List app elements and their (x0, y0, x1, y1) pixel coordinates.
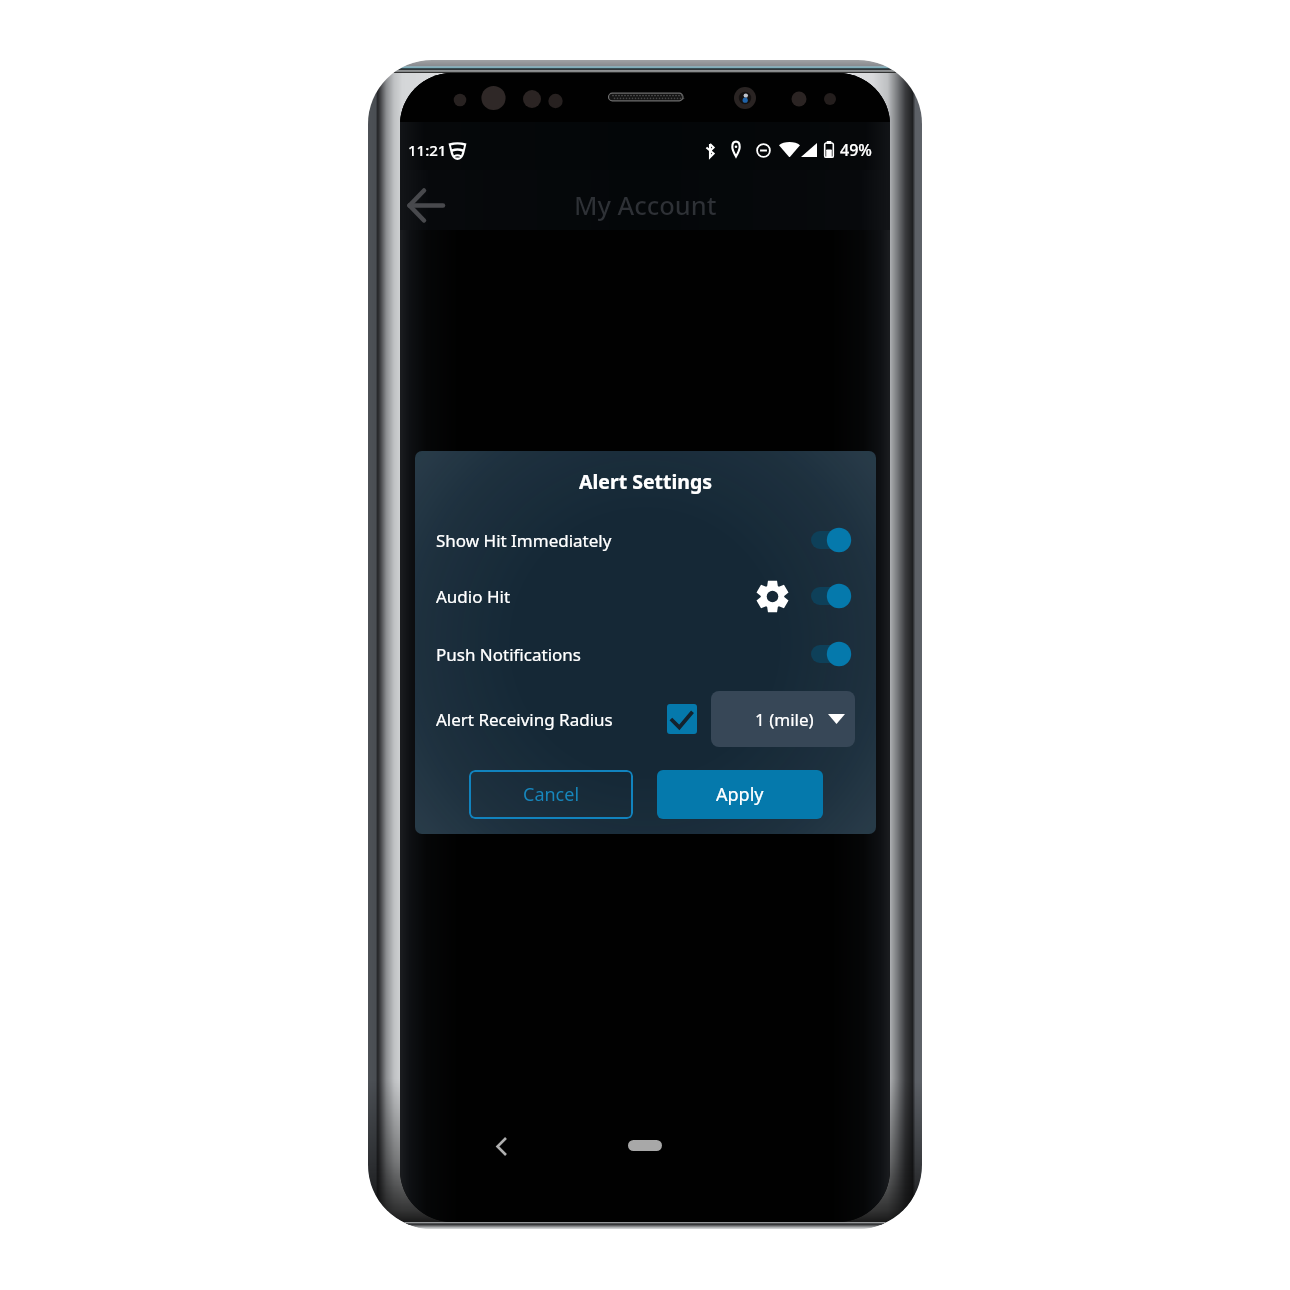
button[interactable]: Back (400, 180, 456, 232)
button[interactable]: Alert receiving radius enabled (667, 704, 697, 734)
staticText: Alert Settings (579, 468, 713, 495)
button[interactable]: 1 (mile) (711, 691, 855, 747)
button[interactable]: Push Notifications, on (811, 639, 852, 669)
staticText: Apply (716, 782, 764, 807)
staticText: Push Notifications (436, 643, 581, 666)
button[interactable]: Audio hit settings (756, 580, 789, 613)
button[interactable]: Apply (657, 770, 823, 819)
button[interactable]: Home (613, 1129, 677, 1161)
staticText: 49% (840, 139, 872, 161)
staticText: Alert Receiving Radius (436, 708, 613, 731)
button[interactable]: Show Hit Immediately (415, 514, 876, 566)
staticText: My Account (574, 188, 717, 223)
staticText: Show Hit Immediately (436, 529, 612, 552)
button[interactable]: Back (479, 1124, 523, 1168)
button[interactable]: Audio Hit, on (811, 581, 852, 611)
button[interactable]: Push Notifications (415, 628, 876, 680)
staticText: 1 (mile) (755, 708, 814, 731)
button[interactable]: Audio Hit (415, 570, 876, 622)
staticText: Audio Hit (436, 585, 511, 608)
button[interactable]: Show Hit Immediately, on (811, 525, 852, 555)
button[interactable]: Cancel (469, 770, 633, 819)
staticText: Cancel (523, 782, 580, 807)
staticText: 11:21 (408, 140, 447, 160)
